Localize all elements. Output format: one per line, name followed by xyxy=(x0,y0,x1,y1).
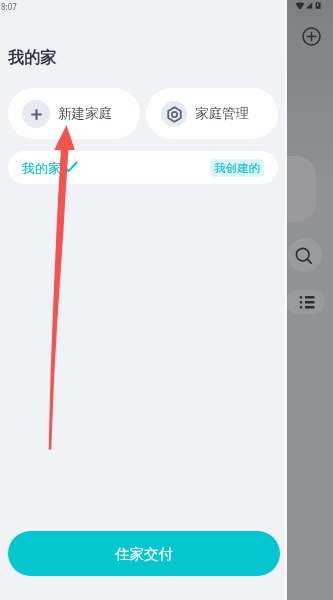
button[interactable]: Add xyxy=(302,27,321,46)
staticText: 8:07 xyxy=(1,1,17,12)
staticText: 新建家庭 xyxy=(58,105,112,122)
staticText: 我的家 xyxy=(8,48,56,68)
staticText: 家庭管理 xyxy=(195,105,249,122)
staticText: 住家交付 xyxy=(115,545,173,563)
button[interactable]: List xyxy=(286,290,325,314)
button[interactable]: 住家交付 xyxy=(8,531,280,576)
staticText: 我创建的 xyxy=(214,161,260,175)
button[interactable]: 我的家 xyxy=(8,151,278,184)
button[interactable]: Search xyxy=(288,238,322,272)
button[interactable]: 新建家庭 xyxy=(8,88,140,139)
button[interactable]: 家庭管理 xyxy=(146,88,278,139)
staticText: 我的家 xyxy=(22,160,61,176)
